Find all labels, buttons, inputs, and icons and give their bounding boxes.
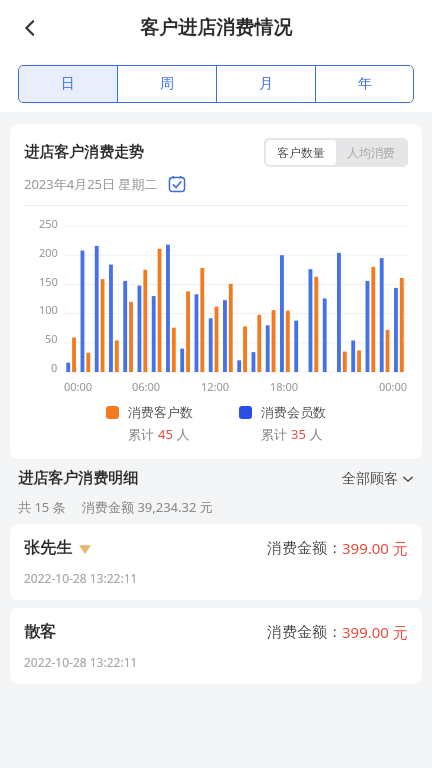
staticText: 人	[173, 425, 190, 443]
staticText: 消费金额：	[267, 623, 342, 642]
staticText: 35	[291, 425, 306, 443]
staticText: 累计	[128, 425, 158, 443]
staticText: 人	[306, 425, 323, 443]
staticText: 月	[259, 75, 273, 93]
staticText: 全部顾客	[342, 470, 398, 488]
button[interactable]: 散客	[10, 608, 422, 684]
staticText: 399.00 元	[342, 622, 408, 642]
staticText: 进店客户消费走势	[24, 143, 144, 162]
staticText: 06:00	[132, 379, 161, 394]
staticText: 100	[39, 302, 58, 314]
button[interactable]: 全部顾客	[342, 470, 414, 488]
button[interactable]: 客户数量	[277, 145, 325, 160]
button[interactable]: 年	[316, 65, 414, 103]
staticText: 399.00 元	[342, 538, 408, 558]
staticText: 200	[39, 245, 58, 257]
staticText: 00:00	[64, 379, 93, 394]
staticText: 45	[158, 425, 173, 443]
staticText: 150	[39, 274, 58, 286]
button[interactable]: 日	[18, 65, 117, 103]
staticText: 18:00	[270, 379, 299, 394]
staticText: 2022-10-28 13:22:11	[24, 570, 138, 586]
staticText: 消费会员数	[261, 404, 326, 420]
staticText: 消费金额 39,234.32 元	[82, 498, 213, 516]
staticText: 日	[61, 75, 75, 93]
staticText: 人均消费	[347, 145, 395, 160]
button[interactable]: 张先生	[10, 524, 422, 600]
button[interactable]: 人均消费	[347, 145, 395, 160]
staticText: 00:00	[379, 379, 408, 394]
staticText: 250	[39, 216, 58, 228]
staticText: 12:00	[201, 379, 230, 394]
staticText: 消费金额：	[267, 539, 342, 558]
button[interactable]: 周	[118, 65, 216, 103]
staticText: 2023年4月25日 星期二	[24, 175, 158, 193]
staticText: 客户数量	[277, 145, 325, 160]
staticText: 累计	[261, 425, 291, 443]
staticText: 0	[51, 360, 58, 372]
staticText: 50	[45, 331, 58, 343]
staticText: 年	[358, 75, 372, 93]
button[interactable]: 月	[217, 65, 315, 103]
staticText: 客户进店消费情况	[140, 16, 292, 40]
staticText: 张先生	[24, 538, 72, 558]
staticText: 消费客户数	[128, 404, 193, 420]
staticText: 进店客户消费明细	[18, 469, 138, 488]
button[interactable]: Pick date	[168, 175, 186, 193]
staticText: 共 15 条	[18, 498, 66, 516]
staticText: 散客	[24, 622, 56, 642]
staticText: 周	[160, 75, 174, 93]
button[interactable]: Back	[8, 6, 52, 50]
staticText: 2022-10-28 13:22:11	[24, 654, 138, 670]
